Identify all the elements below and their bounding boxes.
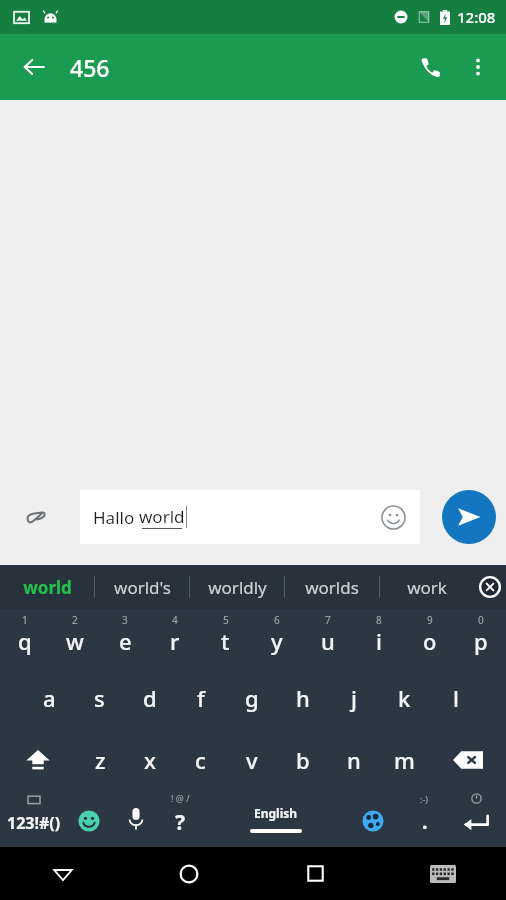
button[interactable]: Attach [14,495,58,539]
staticText: 456 [70,52,110,83]
button[interactable]: v [226,729,277,791]
button[interactable]: :-) [402,791,447,847]
button[interactable]: Voice input [113,791,158,847]
button[interactable]: 0 [455,609,506,667]
staticText: l [453,683,459,713]
button[interactable]: Shift [0,729,75,791]
staticText: k [398,683,411,713]
button[interactable]: l [430,667,481,729]
staticText: 123!#() [7,812,61,834]
button[interactable]: Send [442,490,496,544]
staticText: 5 [223,613,229,627]
staticText: 2 [72,613,78,627]
staticText: ! @ / [171,792,190,804]
staticText: Hallo [93,506,139,529]
button[interactable]: Backspace [430,729,506,791]
button[interactable]: 1 [0,609,50,667]
button[interactable]: f [175,667,226,729]
staticText: f [197,683,205,713]
button[interactable]: j [328,667,379,729]
button[interactable]: Close suggestions [474,565,506,609]
staticText: b [296,745,310,775]
button[interactable]: Space [203,791,348,847]
staticText: z [95,745,106,775]
button[interactable]: world's [95,565,189,609]
button[interactable]: Keyboard switcher [379,847,506,900]
staticText: i [376,626,382,656]
staticText: j [351,683,357,713]
staticText: 12:08 [457,7,496,27]
button[interactable]: Change language [348,791,402,847]
staticText: o [423,626,437,656]
button[interactable]: worldly [190,565,284,609]
staticText: u [321,626,335,656]
button[interactable]: x [125,729,175,791]
staticText: c [195,745,206,775]
staticText: d [143,683,157,713]
button[interactable]: 4 [150,609,200,667]
button[interactable]: b [277,729,328,791]
staticText: g [245,683,259,713]
button[interactable]: Call [406,43,454,91]
staticText: 8 [376,613,382,627]
button[interactable]: 8 [353,609,404,667]
button[interactable]: a [24,667,74,729]
button[interactable]: 123!#() [0,791,68,847]
button[interactable]: h [277,667,328,729]
staticText: q [18,626,32,656]
staticText: 9 [427,613,433,627]
staticText: 1 [22,613,28,627]
staticText: world's [114,576,171,599]
staticText: n [347,745,361,775]
button[interactable]: m [379,729,430,791]
staticText: worlds [305,576,359,599]
button[interactable]: Hallo [80,490,420,544]
button[interactable]: k [379,667,430,729]
staticText: r [170,626,180,656]
button[interactable]: worlds [285,565,379,609]
staticText: m [394,745,415,775]
staticText: w [66,626,84,656]
staticText: e [119,626,132,656]
button[interactable]: Emoji [378,502,408,532]
staticText: p [474,626,488,656]
staticText: ? [175,808,186,837]
button[interactable]: z [75,729,125,791]
staticText: 4 [172,613,178,627]
staticText: work [407,576,447,599]
button[interactable]: n [328,729,379,791]
staticText: world [23,576,72,599]
staticText: y [271,626,283,656]
button[interactable]: More options [454,43,502,91]
button[interactable]: world [0,565,94,609]
button[interactable]: 3 [100,609,150,667]
button[interactable]: d [124,667,175,729]
button[interactable]: ! @ / [158,791,203,847]
staticText: s [94,683,105,713]
button[interactable]: 6 [251,609,302,667]
staticText: v [246,745,258,775]
staticText: :-) [420,793,429,805]
button[interactable]: c [175,729,226,791]
button[interactable]: Enter [447,791,506,847]
staticText: English [254,805,298,821]
button[interactable]: Home [126,847,252,900]
button[interactable]: Back [10,43,58,91]
staticText: . [422,808,428,835]
staticText: 0 [478,613,484,627]
staticText: world [139,505,185,528]
button[interactable]: work [380,565,474,609]
button[interactable]: 2 [50,609,100,667]
button[interactable]: Recent apps [252,847,379,900]
button[interactable]: 9 [404,609,455,667]
staticText: h [296,683,310,713]
button[interactable]: s [74,667,124,729]
button[interactable]: Emoji keyboard [68,791,113,847]
staticText: 3 [122,613,128,627]
button[interactable]: 7 [302,609,353,667]
staticText: t [221,626,230,656]
button[interactable]: g [226,667,277,729]
button[interactable]: 5 [200,609,251,667]
button[interactable]: Back [0,847,126,900]
staticText: 7 [325,613,331,627]
